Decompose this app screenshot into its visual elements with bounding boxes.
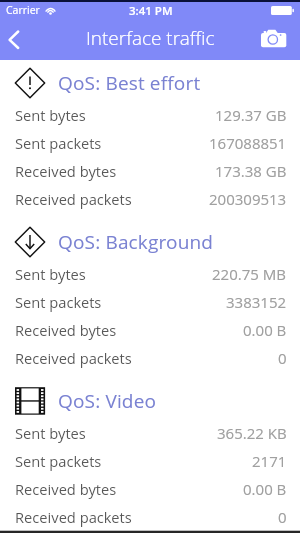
- staticText: Sent bytes: [15, 264, 86, 284]
- button[interactable]: QoS: Best effort: [0, 63, 300, 103]
- staticText: 173.38 GB: [215, 161, 287, 181]
- staticText: QoS: Background: [58, 229, 214, 255]
- button[interactable]: Camera: [256, 20, 300, 60]
- staticText: Received bytes: [15, 479, 117, 499]
- button[interactable]: Back: [0, 20, 30, 60]
- staticText: 200309513: [209, 189, 287, 209]
- button[interactable]: Received bytes: [0, 157, 300, 185]
- button[interactable]: Received packets: [0, 344, 300, 372]
- staticText: 167088851: [209, 133, 287, 153]
- staticText: Sent packets: [15, 451, 102, 471]
- staticText: Received bytes: [15, 320, 117, 340]
- button[interactable]: Received packets: [0, 503, 300, 531]
- staticText: 3383152: [226, 292, 287, 312]
- button[interactable]: Received packets: [0, 185, 300, 213]
- staticText: Received packets: [15, 348, 132, 368]
- button[interactable]: Received bytes: [0, 475, 300, 503]
- button[interactable]: Sent bytes: [0, 260, 300, 288]
- staticText: QoS: Video: [58, 388, 157, 414]
- staticText: 365.22 KB: [217, 423, 287, 443]
- staticText: Sent packets: [15, 133, 102, 153]
- button[interactable]: QoS: Video: [0, 381, 300, 421]
- button[interactable]: Sent bytes: [0, 419, 300, 447]
- button[interactable]: Sent packets: [0, 447, 300, 475]
- button[interactable]: Sent packets: [0, 288, 300, 316]
- button[interactable]: Sent packets: [0, 129, 300, 157]
- staticText: Sent bytes: [15, 423, 86, 443]
- staticText: 0: [278, 507, 287, 527]
- staticText: Received packets: [15, 189, 132, 209]
- staticText: 0: [278, 348, 287, 368]
- staticText: Carrier: [6, 3, 40, 17]
- button[interactable]: Sent bytes: [0, 101, 300, 129]
- button[interactable]: QoS: Background: [0, 222, 300, 262]
- staticText: Received packets: [15, 507, 132, 527]
- staticText: QoS: Best effort: [58, 70, 201, 96]
- staticText: 0.00 B: [243, 320, 287, 340]
- staticText: 3:41 PM: [129, 3, 173, 19]
- staticText: 129.37 GB: [215, 105, 287, 125]
- staticText: Sent packets: [15, 292, 102, 312]
- staticText: 2171: [252, 451, 287, 471]
- staticText: Received bytes: [15, 161, 117, 181]
- staticText: 0.00 B: [243, 479, 287, 499]
- button[interactable]: Received bytes: [0, 316, 300, 344]
- staticText: Sent bytes: [15, 105, 86, 125]
- staticText: 220.75 MB: [212, 264, 287, 284]
- staticText: Interface traffic: [86, 25, 215, 51]
